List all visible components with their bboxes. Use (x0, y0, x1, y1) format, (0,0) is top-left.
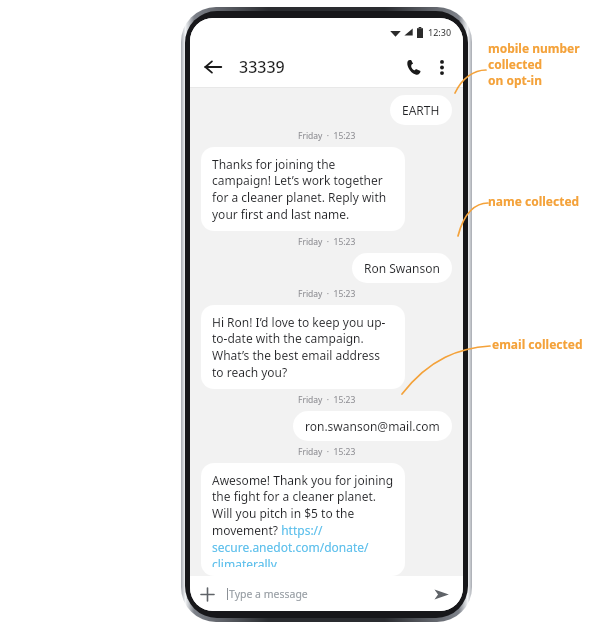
staticText: EARTH (402, 102, 440, 118)
button[interactable]: Ron Swanson (352, 253, 452, 283)
staticText: Hi Ron! I’d love to keep you up-to-date … (212, 314, 394, 380)
staticText: collected (488, 56, 543, 72)
staticText: Ron Swanson (364, 260, 440, 276)
staticText: Thanks for joining the campaign! Let’s w… (212, 156, 394, 222)
staticText: Friday · 15:23 (298, 236, 356, 248)
staticText: mobile number (488, 40, 580, 56)
staticText: Friday · 15:23 (298, 288, 356, 300)
staticText: email collected (492, 336, 583, 352)
button[interactable]: Send (428, 581, 454, 607)
staticText: Friday · 15:23 (298, 130, 356, 142)
staticText: Friday · 15:23 (298, 446, 356, 458)
staticText: Awesome! Thank you for joining the fight… (212, 472, 394, 567)
button[interactable]: Thanks for joining the campaign! Let’s w… (201, 147, 405, 231)
button[interactable]: ron.swanson@mail.com (293, 411, 452, 441)
button[interactable]: More options (429, 54, 455, 80)
staticText: Friday · 15:23 (298, 394, 356, 406)
staticText: name collected (488, 193, 580, 209)
button[interactable]: Hi Ron! I’d love to keep you up-to-date … (201, 305, 405, 389)
button[interactable]: Call (398, 52, 428, 82)
staticText: 33339 (239, 56, 285, 78)
button[interactable]: Add attachment (195, 582, 219, 606)
staticText: ron.swanson@mail.com (305, 418, 440, 434)
staticText: on opt-in (488, 72, 542, 88)
button[interactable]: Back (197, 51, 228, 82)
button[interactable]: Awesome! Thank you for joining the fight… (201, 463, 405, 576)
button[interactable]: EARTH (390, 95, 452, 125)
staticText: Type a message (229, 587, 308, 601)
staticText: 12:30 (428, 26, 452, 38)
